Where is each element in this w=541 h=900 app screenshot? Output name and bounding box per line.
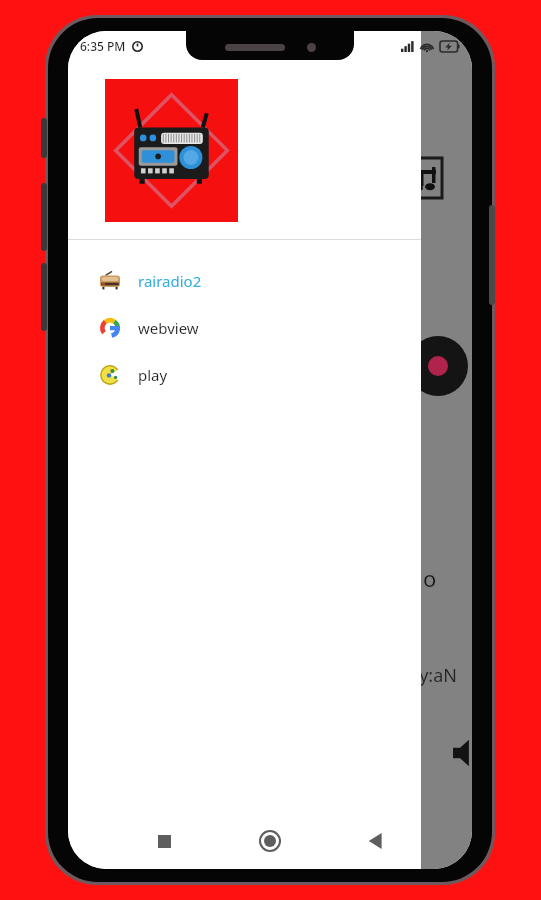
- button[interactable]: Recents: [144, 821, 184, 861]
- button[interactable]: Music: [402, 158, 442, 198]
- button[interactable]: rairadio2: [68, 257, 421, 304]
- staticText: webview: [138, 318, 199, 338]
- staticText: rairadio2: [138, 271, 202, 291]
- staticText: play: [138, 365, 168, 385]
- button[interactable]: Home: [250, 821, 290, 861]
- button[interactable]: Back: [356, 821, 396, 861]
- button[interactable]: Volume: [446, 731, 472, 775]
- staticText: ity:aN: [408, 663, 457, 688]
- staticText: o: [423, 563, 437, 593]
- button[interactable]: [105, 79, 238, 222]
- button[interactable]: webview: [68, 304, 421, 351]
- button[interactable]: play: [68, 351, 421, 398]
- staticText: 6:35 PM: [80, 38, 126, 54]
